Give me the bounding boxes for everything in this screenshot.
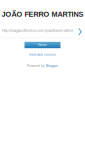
staticText: Home	[38, 43, 47, 47]
button[interactable]: Blogger	[46, 64, 58, 68]
button[interactable]: View web version	[29, 53, 56, 56]
button[interactable]: http://sargacollective.com/joaoferromart…	[0, 26, 85, 34]
staticText: JOÃO FERRO MARTINS	[1, 10, 83, 18]
staticText: View web version	[29, 53, 56, 56]
button[interactable]: Home	[24, 42, 60, 48]
staticText: http://sargacollective.com/joaoferromart…	[2, 28, 73, 33]
staticText: Powered by	[27, 64, 45, 68]
staticText: Blogger	[46, 64, 58, 68]
